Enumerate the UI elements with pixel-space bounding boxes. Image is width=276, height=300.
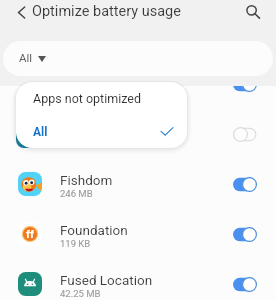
button[interactable]: Search	[240, 0, 266, 25]
staticText: 246 MB	[60, 188, 93, 199]
staticText: All	[19, 51, 33, 64]
button[interactable]: Find My Device	[0, 59, 276, 109]
staticText: Fused Location	[60, 272, 153, 288]
button[interactable]: Navigate up	[8, 0, 34, 25]
button[interactable]: Disabled	[233, 127, 257, 142]
button[interactable]: Enabled	[233, 277, 257, 292]
button[interactable]: All	[3, 41, 273, 76]
button[interactable]: Files	[0, 9, 276, 59]
staticText: 164 MB	[60, 38, 93, 49]
staticText: ff	[26, 228, 34, 241]
button[interactable]: Enabled	[233, 77, 257, 92]
staticText: 42.25 MB	[60, 288, 101, 299]
staticText: Apps not optimized	[33, 91, 142, 106]
button[interactable]: Firefox	[0, 109, 276, 159]
button[interactable]: Enabled	[233, 227, 257, 242]
staticText: Foundation	[60, 222, 128, 238]
staticText: 181 MB	[60, 138, 93, 149]
staticText: 119 KB	[60, 238, 91, 249]
button[interactable]: ff	[0, 209, 276, 259]
button[interactable]: Apps not optimized	[16, 82, 187, 115]
staticText: 12.4 MB	[60, 88, 96, 99]
button[interactable]: Fused Location	[0, 259, 276, 300]
staticText: Fishdom	[60, 172, 113, 188]
button[interactable]: All	[16, 115, 187, 148]
button[interactable]: Enabled	[233, 177, 257, 192]
button[interactable]: Fishdom	[0, 159, 276, 209]
staticText: Find My Device	[60, 72, 151, 88]
staticText: All	[33, 125, 48, 139]
staticText: Optimize battery usage	[32, 3, 181, 20]
